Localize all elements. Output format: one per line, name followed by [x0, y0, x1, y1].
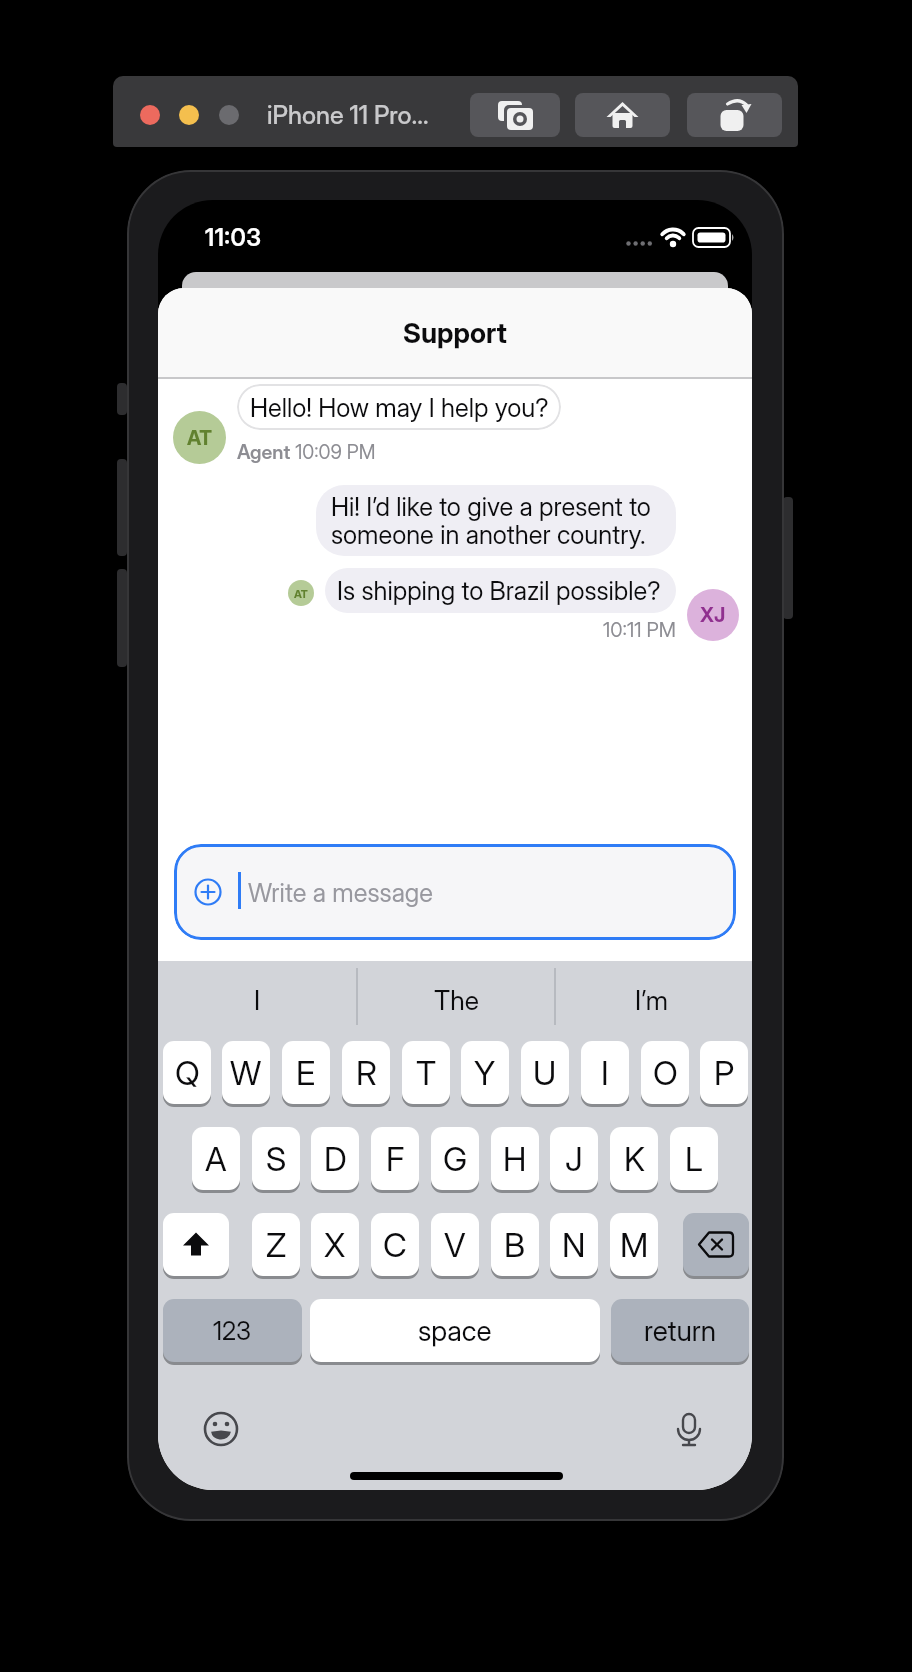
staticText: iPhone 11 Pro… — [267, 100, 429, 130]
button[interactable]: J — [550, 1127, 598, 1190]
button[interactable] — [575, 93, 670, 137]
button[interactable]: I — [581, 1041, 629, 1104]
button[interactable] — [219, 105, 239, 125]
button[interactable]: I — [191, 978, 323, 1022]
staticText: I’m — [635, 984, 668, 1016]
button[interactable] — [189, 1397, 253, 1461]
staticText: Hi! I’d like to give a present to someon… — [331, 491, 651, 550]
staticText: W — [230, 1053, 262, 1093]
button[interactable]: F — [371, 1127, 419, 1190]
staticText: space — [418, 1314, 492, 1348]
button[interactable] — [657, 1397, 721, 1461]
staticText: J — [565, 1139, 583, 1179]
staticText: T — [416, 1053, 437, 1093]
staticText: V — [444, 1225, 466, 1265]
button[interactable] — [140, 105, 160, 125]
button[interactable]: C — [371, 1213, 419, 1276]
staticText: The — [434, 984, 479, 1016]
staticText: O — [653, 1053, 678, 1093]
staticText: X — [324, 1225, 346, 1265]
staticText: A — [205, 1139, 227, 1179]
staticText: I — [601, 1053, 609, 1093]
button[interactable]: R — [342, 1041, 390, 1104]
staticText: Support — [403, 316, 507, 349]
button[interactable] — [683, 1213, 749, 1276]
staticText: AT — [294, 587, 308, 600]
button[interactable]: S — [252, 1127, 300, 1190]
staticText: P — [714, 1053, 735, 1093]
button[interactable]: H — [491, 1127, 539, 1190]
button[interactable]: Z — [252, 1213, 300, 1276]
button[interactable]: E — [282, 1041, 330, 1104]
button[interactable]: D — [311, 1127, 359, 1190]
button[interactable]: Q — [163, 1041, 211, 1104]
button[interactable]: The — [390, 978, 522, 1022]
button[interactable]: return — [611, 1299, 749, 1362]
staticText: I — [254, 984, 261, 1016]
staticText: H — [503, 1139, 527, 1179]
button[interactable] — [470, 93, 560, 137]
button[interactable]: space — [310, 1299, 600, 1362]
staticText: Q — [175, 1053, 200, 1093]
staticText: N — [562, 1225, 586, 1265]
staticText: S — [266, 1139, 287, 1179]
button[interactable] — [687, 93, 782, 137]
staticText: 11:03 — [205, 223, 262, 252]
staticText: U — [533, 1053, 557, 1093]
button[interactable]: P — [700, 1041, 748, 1104]
button[interactable]: A — [192, 1127, 240, 1190]
staticText: Agent 10:09 PM — [237, 440, 376, 464]
button[interactable]: L — [670, 1127, 718, 1190]
button[interactable]: U — [521, 1041, 569, 1104]
button[interactable]: M — [610, 1213, 658, 1276]
staticText: Hello! How may I help you? — [250, 392, 549, 423]
button[interactable]: 123 — [163, 1299, 302, 1362]
staticText: Is shipping to Brazil possible? — [337, 575, 661, 606]
staticText: C — [383, 1225, 407, 1265]
staticText: Write a message — [248, 877, 433, 908]
staticText: G — [443, 1139, 468, 1179]
staticText: Z — [266, 1225, 287, 1265]
button[interactable]: K — [610, 1127, 658, 1190]
button[interactable] — [163, 1213, 229, 1276]
button[interactable]: N — [550, 1213, 598, 1276]
button[interactable]: T — [402, 1041, 450, 1104]
staticText: D — [324, 1139, 347, 1179]
button[interactable]: B — [491, 1213, 539, 1276]
button[interactable]: I’m — [585, 978, 717, 1022]
staticText: E — [296, 1053, 316, 1093]
button[interactable]: Write a message — [174, 844, 736, 940]
staticText: 10:11 PM — [603, 618, 676, 640]
staticText: K — [624, 1139, 645, 1179]
staticText: F — [386, 1139, 405, 1179]
staticText: AT — [187, 426, 213, 450]
staticText: R — [356, 1053, 377, 1093]
staticText: Y — [474, 1053, 496, 1093]
button[interactable]: W — [222, 1041, 270, 1104]
button[interactable] — [179, 105, 199, 125]
button[interactable]: V — [431, 1213, 479, 1276]
staticText: XJ — [700, 603, 726, 627]
staticText: 123 — [213, 1316, 252, 1346]
staticText: B — [504, 1225, 526, 1265]
staticText: return — [644, 1314, 717, 1348]
button[interactable]: X — [311, 1213, 359, 1276]
staticText: M — [620, 1225, 649, 1265]
button[interactable]: Y — [461, 1041, 509, 1104]
button[interactable]: G — [431, 1127, 479, 1190]
button[interactable]: O — [641, 1041, 689, 1104]
staticText: L — [685, 1139, 703, 1179]
